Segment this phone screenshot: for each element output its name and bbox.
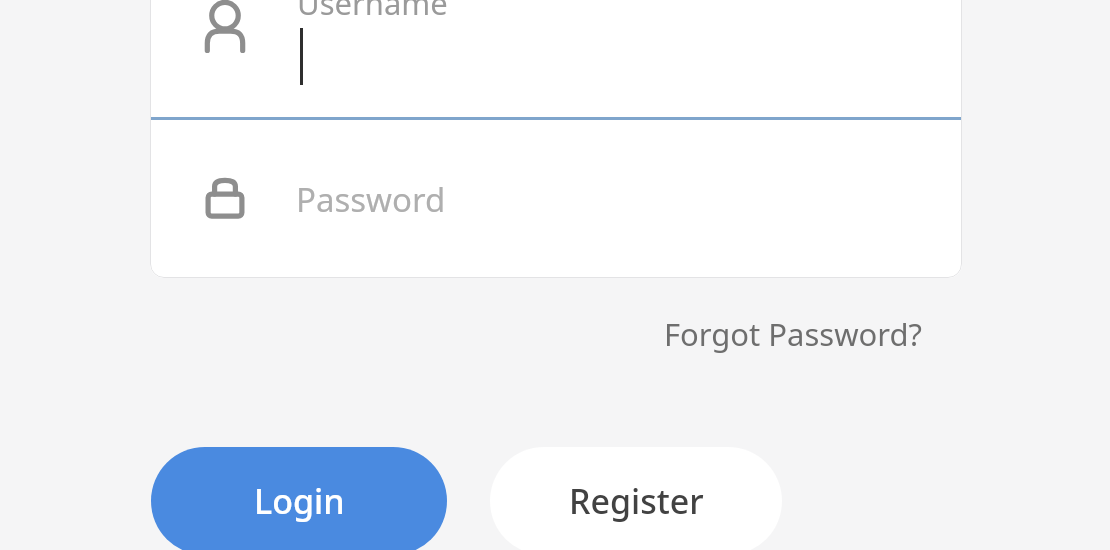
staticText: Login: [254, 478, 345, 524]
staticText: Register: [569, 478, 704, 524]
staticText: Forgot Password?: [663, 313, 922, 355]
button[interactable]: Username: [150, 0, 962, 117]
staticText: Username: [297, 0, 448, 24]
button[interactable]: Login: [151, 447, 447, 550]
button[interactable]: Forgot Password?: [643, 305, 942, 363]
staticText: Password: [296, 177, 446, 222]
button[interactable]: Password: [150, 120, 962, 278]
button[interactable]: Register: [490, 447, 782, 550]
other: Password: [199, 173, 251, 225]
other: Username: [199, 0, 251, 52]
